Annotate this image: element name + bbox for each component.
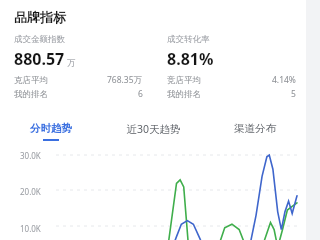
staticText: 8.81% [167,48,214,70]
staticText: 克店平均 [14,75,48,86]
staticText: 分时趋势 [30,122,72,135]
staticText: 成交转化率 [167,34,210,45]
button[interactable]: 近30天趋势 [102,122,204,140]
staticText: 768.35万 [107,74,143,86]
button[interactable]: 渠道分布 [204,122,306,139]
staticText: 6 [138,88,143,100]
staticText: 20.0K [20,186,41,197]
staticText: 万 [67,58,76,69]
staticText: 30.0K [20,150,41,161]
staticText: 渠道分布 [234,122,276,135]
staticText: 880.57 [14,48,65,70]
staticText: 竞店平均 [167,75,201,86]
button[interactable]: 分时趋势 [0,122,102,141]
staticText: 成交金额指数 [14,34,65,45]
staticText: 10.0K [20,223,41,234]
staticText: 我的排名 [167,89,201,100]
staticText: 4.14% [272,74,296,86]
staticText: 5 [291,88,296,100]
staticText: 我的排名 [14,89,48,100]
staticText: 近30天趋势 [126,122,181,136]
staticText: 品牌指标 [14,9,66,25]
